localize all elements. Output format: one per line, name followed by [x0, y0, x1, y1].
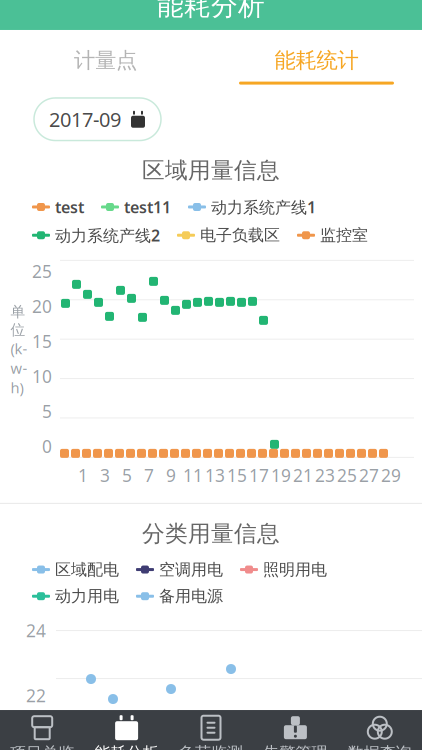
staticText: 27 — [359, 464, 379, 487]
button[interactable]: 告警管理 — [253, 710, 338, 750]
staticText: 15 — [32, 330, 52, 353]
staticText: 备用电源 — [159, 586, 223, 606]
staticText: 9 — [166, 464, 176, 487]
staticText: 19 — [271, 464, 291, 487]
staticText: 7 — [144, 464, 154, 487]
staticText: 17 — [249, 464, 269, 487]
staticText: 25 — [32, 260, 52, 283]
button[interactable]: 2017-09 — [34, 98, 161, 141]
staticText: 11 — [183, 464, 203, 487]
staticText: 监控室 — [320, 225, 368, 245]
staticText: 5 — [122, 464, 132, 487]
staticText: 动力系统产线2 — [55, 225, 160, 246]
staticText: 负荷监测 — [179, 743, 243, 750]
button[interactable]: 负荷监测 — [169, 710, 253, 750]
staticText: 22 — [26, 684, 46, 707]
staticText: 0 — [42, 435, 52, 458]
staticText: 动力系统产线1 — [211, 196, 316, 218]
button[interactable]: 数据查询 — [338, 710, 422, 750]
staticText: 计量点 — [74, 47, 137, 74]
staticText: 数据查询 — [348, 743, 412, 750]
button[interactable]: 计量点 — [0, 31, 211, 85]
staticText: 区域用量信息 — [142, 156, 280, 184]
staticText: 能耗统计 — [274, 47, 358, 74]
staticText: 10 — [32, 365, 52, 388]
staticText: 5 — [42, 400, 52, 423]
staticText: 动力用电 — [55, 586, 119, 606]
staticText: 项目总览 — [10, 743, 74, 750]
staticText: 25 — [337, 464, 357, 487]
button[interactable]: 能耗统计 — [211, 31, 422, 85]
staticText: 告警管理 — [263, 743, 327, 750]
staticText: 电子负载区 — [200, 225, 280, 245]
staticText: 21 — [293, 464, 313, 487]
staticText: test — [55, 196, 84, 218]
staticText: 23 — [315, 464, 335, 487]
staticText: 13 — [205, 464, 225, 487]
staticText: 单位(kwh) — [10, 303, 27, 417]
staticText: 29 — [381, 464, 401, 487]
staticText: 空调用电 — [159, 560, 223, 579]
staticText: 分类用量信息 — [142, 520, 280, 548]
staticText: 20 — [32, 295, 52, 318]
button[interactable]: 能耗分析 — [84, 710, 169, 750]
staticText: 15 — [227, 464, 247, 487]
staticText: 1 — [78, 464, 88, 487]
staticText: 3 — [100, 464, 110, 487]
button[interactable]: 项目总览 — [0, 710, 84, 750]
staticText: 2017-09 — [49, 106, 121, 133]
staticText: 能耗分析 — [157, 0, 265, 22]
staticText: test11 — [124, 196, 171, 218]
staticText: 照明用电 — [263, 560, 327, 579]
staticText: 24 — [26, 619, 46, 642]
staticText: 区域配电 — [55, 560, 119, 579]
staticText: 能耗分析 — [95, 743, 159, 750]
